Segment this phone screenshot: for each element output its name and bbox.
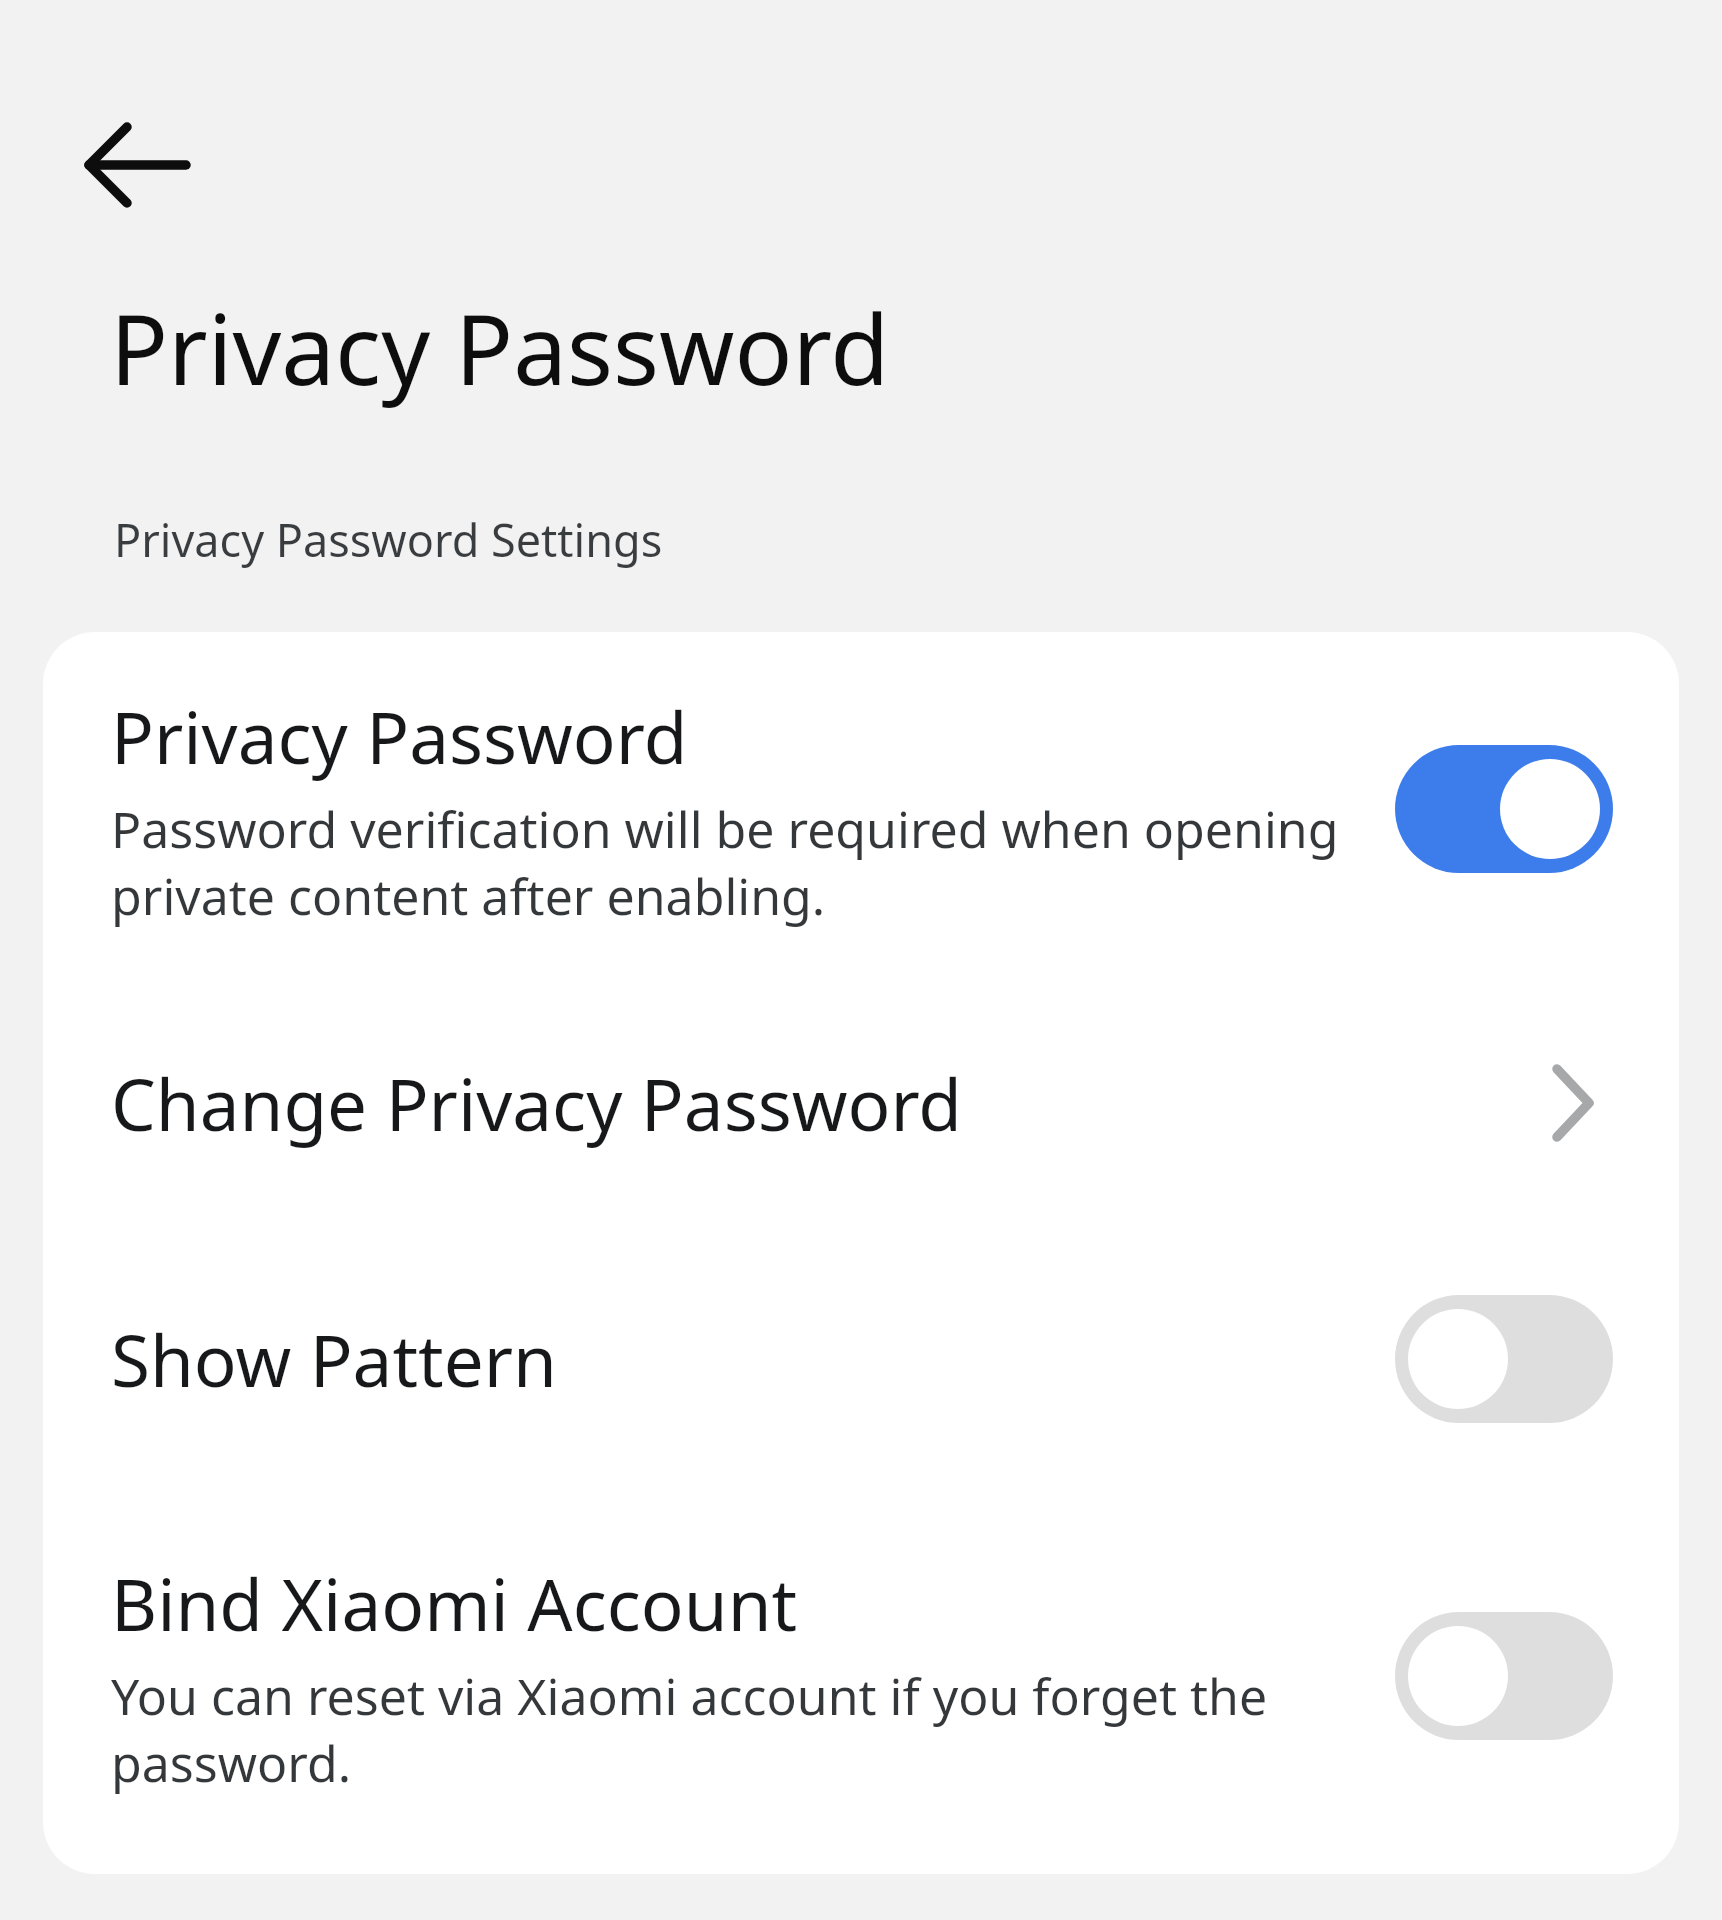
staticText: Show Pattern <box>111 1311 557 1408</box>
staticText: Privacy Password <box>111 688 688 785</box>
staticText: Privacy Password Settings <box>114 509 663 570</box>
button[interactable]: Privacy Password <box>43 632 1679 995</box>
button[interactable]: Show Pattern off <box>1395 1295 1613 1423</box>
button[interactable]: Bind Xiaomi Account <box>43 1515 1679 1874</box>
button[interactable]: Back <box>76 104 198 226</box>
staticText: Bind Xiaomi Account <box>111 1555 798 1652</box>
button[interactable]: Change Privacy Password <box>43 995 1679 1251</box>
button[interactable]: Open <box>1533 1043 1613 1163</box>
button[interactable]: Bind Xiaomi Account off <box>1395 1612 1613 1740</box>
staticText: Privacy Password <box>110 282 890 413</box>
staticText: Change Privacy Password <box>111 1055 963 1152</box>
button[interactable]: Show Pattern <box>43 1251 1679 1515</box>
staticText: You can reset via Xiaomi account if you … <box>111 1662 1359 1796</box>
button[interactable]: Privacy Password on <box>1395 745 1613 873</box>
staticText: Password verification will be required w… <box>111 795 1359 929</box>
